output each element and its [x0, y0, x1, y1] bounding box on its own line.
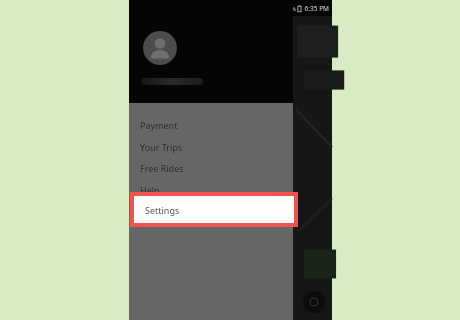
- staticText: Help: [140, 184, 160, 196]
- button[interactable]: Payment: [129, 114, 293, 135]
- button[interactable]: Your Trips: [129, 136, 293, 157]
- other: Profile photo: [143, 31, 177, 65]
- staticText: 35%: [284, 5, 296, 13]
- button[interactable]: Help: [129, 179, 293, 200]
- staticText: 6:35 PM: [304, 4, 329, 13]
- staticText: Free Rides: [140, 162, 184, 174]
- button[interactable]: Free Rides: [129, 157, 293, 178]
- button[interactable]: Profile photo: [129, 0, 293, 103]
- staticText: Payment: [140, 119, 178, 131]
- staticText: Your Trips: [140, 141, 183, 153]
- button[interactable]: Settings: [134, 196, 294, 223]
- staticText: Settings: [145, 204, 180, 216]
- button[interactable]: Locate me: [303, 291, 325, 313]
